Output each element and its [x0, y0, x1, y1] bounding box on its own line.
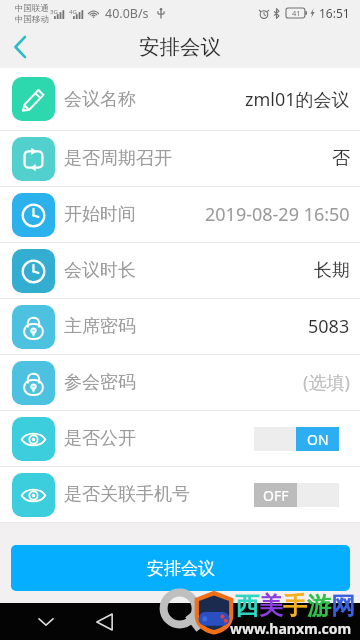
staticText: 会议名称 — [64, 88, 136, 111]
button[interactable]: Back — [82, 603, 126, 640]
staticText: 41 — [292, 8, 301, 18]
button[interactable]: 开始时间 — [0, 187, 360, 242]
staticText: 开始时间 — [64, 203, 136, 226]
staticText: 美 — [259, 591, 283, 621]
staticText: 西 — [235, 591, 259, 621]
staticText: 安排会议 — [147, 558, 215, 579]
staticText: 手 — [283, 591, 307, 621]
button[interactable]: Hide keyboard — [24, 603, 68, 640]
staticText: 2019-08-29 16:50 — [205, 202, 350, 227]
staticText: 中国移动 — [15, 14, 49, 25]
staticText: 5083 — [308, 314, 350, 339]
staticText: 是否公开 — [64, 427, 136, 450]
staticText: 4G — [69, 8, 77, 16]
staticText: zml01的会议 — [245, 87, 350, 112]
staticText: 主席密码 — [64, 315, 136, 338]
staticText: OFF — [263, 486, 289, 505]
button[interactable]: 参会密码 — [0, 355, 360, 410]
button[interactable]: 会议名称 — [0, 68, 360, 130]
staticText: 3G — [50, 8, 58, 16]
button[interactable]: Switch off — [254, 483, 339, 507]
staticText: 是否周期召开 — [64, 147, 172, 170]
staticText: 参会密码 — [64, 371, 136, 394]
staticText: (选填) — [303, 370, 350, 395]
button[interactable]: 是否周期召开 — [0, 131, 360, 186]
staticText: 40.0B/s — [105, 5, 149, 22]
staticText: 否 — [332, 147, 350, 170]
button[interactable]: 安排会议 — [11, 545, 350, 591]
staticText: 是否关联手机号 — [64, 483, 190, 506]
staticText: 会议时长 — [64, 259, 136, 282]
staticText: www.hanxm.com — [230, 619, 352, 638]
staticText: 游 — [307, 591, 331, 621]
staticText: 长期 — [314, 259, 350, 282]
staticText: 中国联通 — [15, 3, 49, 14]
staticText: 网 — [331, 591, 355, 621]
staticText: ON — [307, 430, 329, 449]
button[interactable]: 会议时长 — [0, 243, 360, 298]
button[interactable]: Back — [0, 27, 40, 67]
staticText: 安排会议 — [139, 34, 221, 60]
staticText: 16:51 — [319, 5, 350, 21]
button[interactable]: Switch on — [254, 427, 339, 451]
button[interactable]: 主席密码 — [0, 299, 360, 354]
